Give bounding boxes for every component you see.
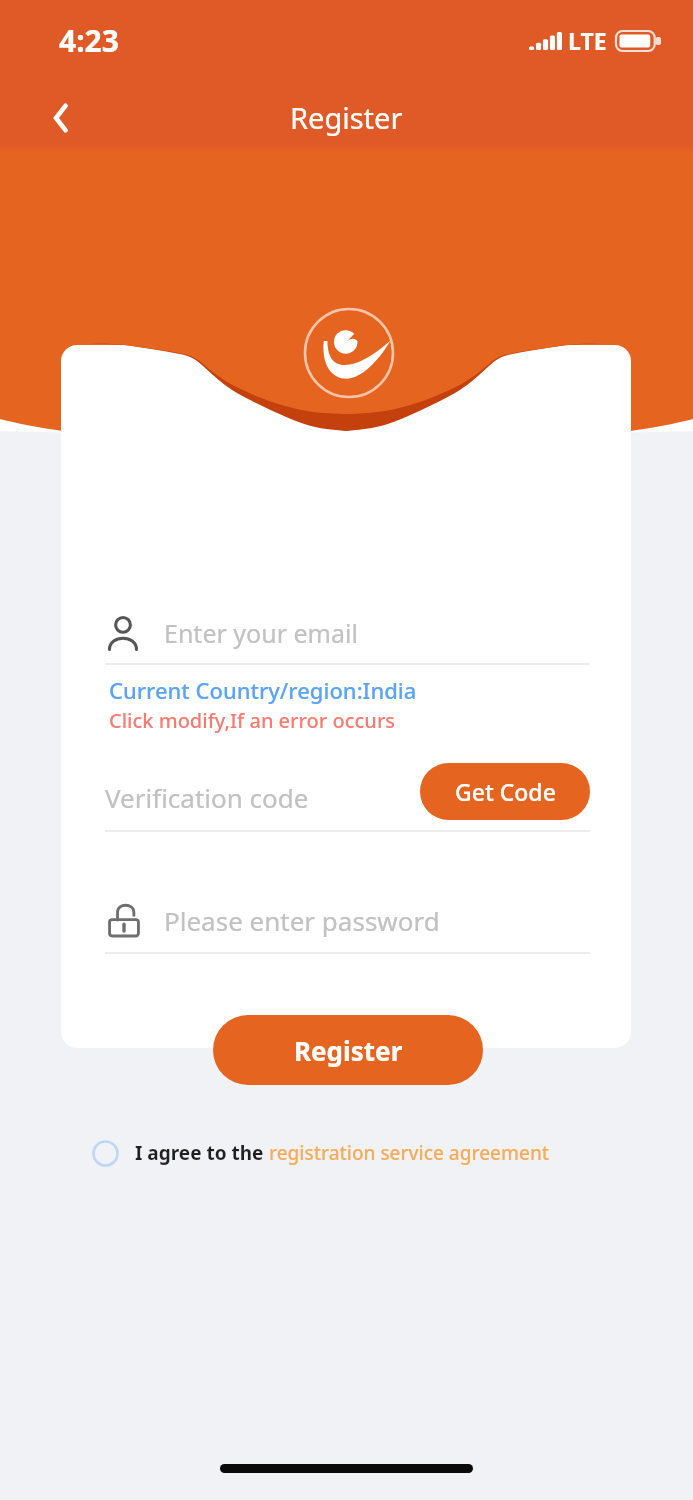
staticText: Click modify,If an error occurs: [109, 707, 396, 734]
staticText: Please enter password: [164, 903, 440, 938]
staticText: registration service agreement: [269, 1140, 550, 1166]
button[interactable]: Register: [213, 1015, 483, 1085]
button[interactable]: Back: [30, 89, 88, 147]
staticText: LTE: [568, 25, 607, 56]
button[interactable]: I agree to the: [92, 1130, 550, 1176]
staticText: Enter your email: [164, 616, 358, 650]
staticText: Verification code: [105, 780, 309, 815]
staticText: Current Country/region:India: [109, 675, 417, 705]
button[interactable]: Get Code: [420, 763, 590, 820]
staticText: 4:23: [59, 20, 119, 61]
staticText: I agree to the: [135, 1140, 269, 1166]
staticText: Get Code: [455, 776, 556, 807]
staticText: Register: [290, 98, 403, 137]
staticText: Register: [294, 1033, 403, 1068]
